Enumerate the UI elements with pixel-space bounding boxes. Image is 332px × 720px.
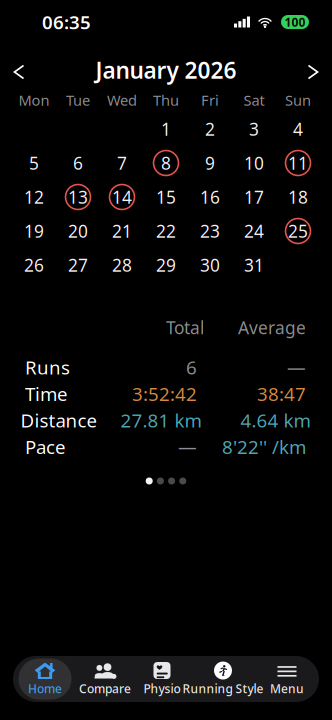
staticText: 4 — [293, 117, 303, 140]
staticText: 06:35 — [42, 10, 91, 34]
staticText: 6 — [186, 355, 197, 380]
staticText: Total — [166, 316, 204, 339]
staticText: 28 — [112, 253, 132, 276]
staticText: 6 — [73, 151, 83, 174]
staticText: 23 — [200, 219, 220, 242]
staticText: 16 — [200, 185, 220, 208]
staticText: 3 — [249, 117, 259, 140]
staticText: 18 — [288, 185, 308, 208]
staticText: Wed — [107, 90, 137, 110]
staticText: 11 — [288, 151, 308, 174]
button[interactable]: Menu — [255, 656, 319, 702]
staticText: 31 — [244, 253, 264, 276]
button[interactable]: Compare — [77, 656, 133, 702]
staticText: Home — [28, 680, 62, 696]
staticText: Running Style — [182, 680, 263, 696]
staticText: 100 — [284, 14, 305, 30]
staticText: 27 — [68, 253, 88, 276]
staticText: 12 — [24, 185, 44, 208]
staticText: Menu — [270, 680, 304, 696]
staticText: Mon — [18, 90, 49, 110]
staticText: 7 — [117, 151, 127, 174]
staticText: 25 — [288, 219, 308, 242]
staticText: — — [287, 355, 306, 380]
staticText: Average — [238, 316, 306, 339]
staticText: — — [178, 434, 197, 459]
button[interactable]: Home — [13, 656, 77, 702]
staticText: Tue — [66, 90, 90, 110]
staticText: 14 — [112, 185, 132, 208]
staticText: Distance — [20, 408, 97, 433]
staticText: 24 — [244, 219, 264, 242]
staticText: 38:47 — [257, 381, 306, 406]
staticText: Compare — [79, 680, 131, 696]
staticText: 3:52:42 — [132, 381, 197, 406]
staticText: Pace — [25, 434, 66, 459]
staticText: 10 — [244, 151, 264, 174]
staticText: 27.81 km — [120, 408, 201, 433]
staticText: 22 — [156, 219, 176, 242]
staticText: 9 — [205, 151, 215, 174]
staticText: 19 — [24, 219, 44, 242]
staticText: Thu — [153, 90, 179, 110]
staticText: 29 — [156, 253, 176, 276]
staticText: 1 — [161, 117, 171, 140]
staticText: 26 — [24, 253, 44, 276]
button[interactable]: Next month — [292, 44, 332, 88]
staticText: Time — [25, 381, 68, 406]
button[interactable]: Physio — [133, 656, 191, 702]
button[interactable]: Previous month — [0, 44, 40, 88]
staticText: 20 — [68, 219, 88, 242]
staticText: Sat — [243, 90, 264, 110]
staticText: Runs — [25, 355, 70, 380]
staticText: 21 — [112, 219, 132, 242]
staticText: 8'22'' /km — [222, 434, 306, 459]
staticText: Sun — [285, 90, 311, 110]
staticText: 8 — [161, 151, 171, 174]
staticText: 5 — [29, 151, 39, 174]
staticText: 17 — [244, 185, 264, 208]
staticText: Physio — [143, 680, 180, 696]
staticText: 13 — [68, 185, 88, 208]
staticText: 4.64 km — [240, 408, 310, 433]
staticText: Fri — [201, 90, 219, 110]
staticText: 30 — [200, 253, 220, 276]
staticText: 15 — [156, 185, 176, 208]
staticText: 2 — [205, 117, 215, 140]
button[interactable]: Running Style — [191, 656, 255, 702]
staticText: January 2026 — [95, 55, 236, 85]
